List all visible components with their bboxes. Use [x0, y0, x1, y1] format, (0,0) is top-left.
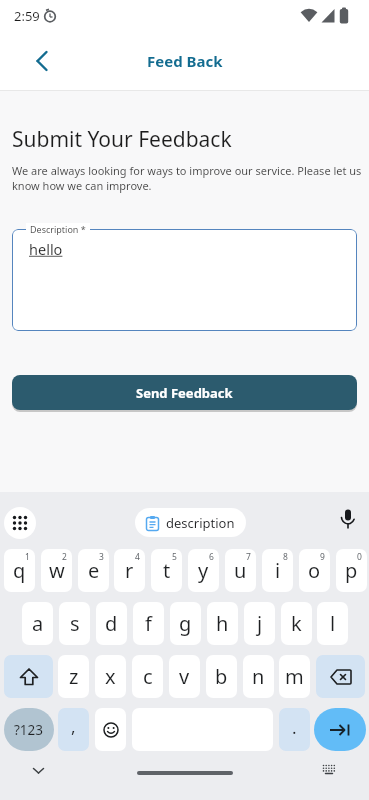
- button[interactable]: t: [151, 549, 182, 592]
- button[interactable]: u: [225, 549, 256, 592]
- button[interactable]: v: [169, 655, 200, 698]
- button[interactable]: [4, 507, 36, 539]
- staticText: 9: [320, 551, 325, 563]
- staticText: s: [70, 610, 80, 637]
- staticText: 8: [283, 551, 288, 563]
- button[interactable]: w: [41, 549, 72, 592]
- staticText: n: [252, 663, 265, 690]
- staticText: e: [88, 557, 100, 584]
- staticText: description: [166, 514, 235, 532]
- staticText: y: [198, 557, 209, 584]
- staticText: p: [345, 557, 358, 584]
- staticText: z: [69, 663, 79, 690]
- staticText: 5: [172, 551, 177, 563]
- button[interactable]: a: [22, 602, 53, 645]
- staticText: q: [13, 557, 26, 584]
- button[interactable]: hello: [12, 229, 357, 331]
- button[interactable]: description: [135, 508, 246, 537]
- staticText: h: [216, 610, 229, 637]
- button[interactable]: [95, 708, 126, 751]
- button[interactable]: .: [279, 708, 310, 751]
- button[interactable]: l: [317, 602, 348, 645]
- staticText: d: [105, 610, 118, 637]
- staticText: Description *: [30, 223, 86, 235]
- button[interactable]: i: [262, 549, 293, 592]
- staticText: l: [330, 610, 336, 637]
- button[interactable]: j: [244, 602, 275, 645]
- staticText: u: [234, 557, 247, 584]
- button[interactable]: ,: [58, 708, 89, 751]
- button[interactable]: [4, 655, 53, 698]
- button[interactable]: [22, 41, 62, 81]
- staticText: 3: [99, 551, 104, 563]
- staticText: o: [308, 557, 321, 584]
- staticText: w: [49, 557, 65, 584]
- staticText: m: [285, 663, 304, 690]
- button[interactable]: o: [299, 549, 330, 592]
- button[interactable]: r: [114, 549, 145, 592]
- staticText: 7: [246, 551, 251, 563]
- staticText: Submit Your Feedback: [12, 125, 232, 154]
- button[interactable]: [316, 757, 342, 781]
- staticText: k: [291, 610, 302, 637]
- staticText: i: [275, 557, 281, 584]
- staticText: Send Feedback: [136, 384, 233, 402]
- staticText: 4: [135, 551, 140, 563]
- staticText: r: [125, 557, 134, 584]
- button[interactable]: b: [206, 655, 237, 698]
- staticText: x: [105, 663, 116, 690]
- staticText: v: [179, 663, 190, 690]
- staticText: 2: [62, 551, 67, 563]
- button[interactable]: [316, 655, 365, 698]
- button[interactable]: p: [336, 549, 367, 592]
- button[interactable]: h: [207, 602, 238, 645]
- button[interactable]: y: [188, 549, 219, 592]
- staticText: Feed Back: [147, 51, 223, 71]
- button[interactable]: ?123: [4, 708, 54, 751]
- button[interactable]: [334, 504, 362, 536]
- staticText: .: [292, 716, 297, 739]
- button[interactable]: q: [4, 549, 35, 592]
- staticText: We are always looking for ways to improv…: [12, 163, 369, 193]
- staticText: ,: [71, 715, 76, 738]
- staticText: 6: [209, 551, 214, 563]
- staticText: b: [215, 663, 228, 690]
- staticText: 2:59: [14, 7, 40, 25]
- staticText: f: [145, 610, 152, 637]
- staticText: ?123: [14, 721, 44, 739]
- staticText: t: [163, 557, 171, 584]
- button[interactable]: s: [59, 602, 90, 645]
- button[interactable]: [137, 771, 233, 775]
- button[interactable]: f: [133, 602, 164, 645]
- button[interactable]: x: [95, 655, 126, 698]
- button[interactable]: m: [279, 655, 310, 698]
- staticText: j: [257, 610, 263, 637]
- staticText: 1: [25, 551, 30, 563]
- button[interactable]: k: [281, 602, 312, 645]
- button[interactable]: g: [170, 602, 201, 645]
- staticText: c: [143, 663, 153, 690]
- staticText: g: [179, 610, 192, 637]
- staticText: a: [32, 610, 44, 637]
- staticText: 0: [357, 551, 362, 563]
- button[interactable]: [314, 708, 366, 751]
- button[interactable]: Send Feedback: [12, 375, 357, 410]
- staticText: hello: [29, 239, 63, 259]
- button[interactable]: e: [78, 549, 109, 592]
- button[interactable]: c: [132, 655, 163, 698]
- button[interactable]: [24, 759, 52, 783]
- button[interactable]: d: [96, 602, 127, 645]
- button[interactable]: n: [243, 655, 274, 698]
- button[interactable]: z: [58, 655, 89, 698]
